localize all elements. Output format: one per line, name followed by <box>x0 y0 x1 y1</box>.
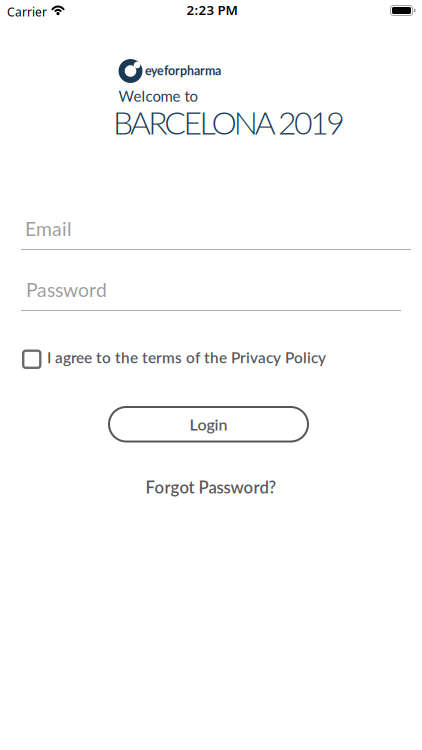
staticText: 2:23 PM <box>186 1 237 19</box>
staticText: eyeforpharma <box>145 63 221 78</box>
button[interactable]: Forgot Password? <box>145 477 276 497</box>
button[interactable]: Email <box>21 216 411 250</box>
staticText: Welcome to <box>118 87 197 105</box>
staticText: BARCELONA 2019 <box>113 103 345 141</box>
staticText: Carrier <box>7 4 47 20</box>
staticText: I agree to the terms of the Privacy Poli… <box>47 348 326 366</box>
staticText: Login <box>189 415 227 434</box>
button[interactable]: Password <box>21 277 401 311</box>
staticText: Forgot Password? <box>145 477 276 497</box>
staticText: Password <box>26 278 107 301</box>
button[interactable]: Login <box>108 406 309 442</box>
staticText: Email <box>25 217 72 240</box>
button[interactable]: I agree to the terms of the Privacy Poli… <box>22 349 332 369</box>
